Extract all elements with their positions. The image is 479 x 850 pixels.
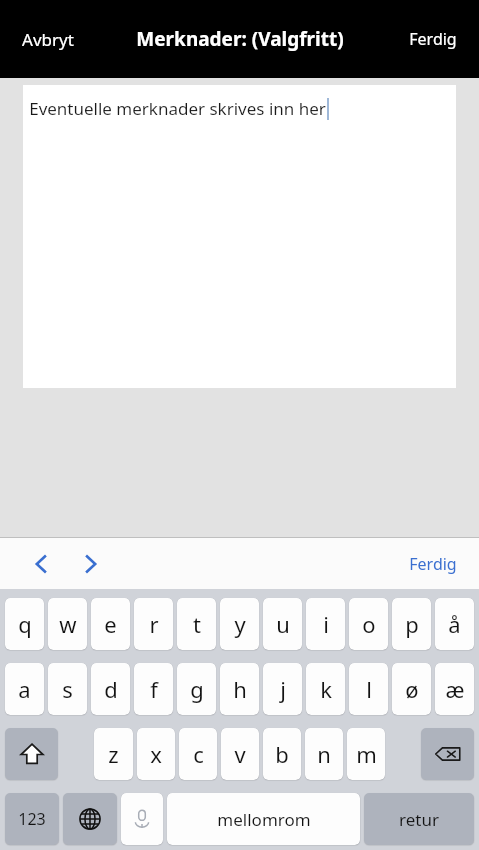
button[interactable]: Next field (70, 544, 110, 584)
staticText: Ferdig (409, 28, 457, 50)
button[interactable]: m (347, 728, 385, 780)
button[interactable]: w (48, 598, 87, 650)
button[interactable]: g (177, 663, 216, 715)
button[interactable]: Eventuelle merknader skrives inn her (23, 85, 456, 388)
staticText: z (108, 739, 119, 769)
staticText: l (366, 674, 372, 704)
button[interactable]: ø (392, 663, 431, 715)
staticText: Ferdig (409, 553, 457, 575)
button[interactable]: Previous field (22, 544, 62, 584)
staticText: o (362, 609, 376, 639)
staticText: b (275, 739, 289, 769)
button[interactable]: Ferdig (397, 545, 469, 583)
staticText: 123 (18, 808, 46, 830)
staticText: s (62, 674, 73, 704)
button[interactable]: j (263, 663, 302, 715)
button[interactable]: c (179, 728, 217, 780)
staticText: f (150, 674, 158, 704)
button[interactable]: k (306, 663, 345, 715)
button[interactable]: æ (435, 663, 474, 715)
staticText: u (276, 609, 290, 639)
staticText: j (280, 674, 286, 704)
staticText: Avbryt (22, 28, 74, 51)
button[interactable]: f (134, 663, 173, 715)
button[interactable]: a (5, 663, 44, 715)
button[interactable]: d (91, 663, 130, 715)
button[interactable]: 123 (5, 793, 59, 845)
button[interactable]: r (134, 598, 173, 650)
button[interactable]: n (305, 728, 343, 780)
staticText: q (18, 609, 32, 639)
staticText: x (150, 739, 162, 769)
staticText: p (405, 609, 419, 639)
button[interactable]: x (137, 728, 175, 780)
staticText: mellomrom (217, 808, 311, 831)
staticText: k (320, 674, 332, 704)
staticText: t (193, 609, 201, 639)
staticText: n (317, 739, 331, 769)
staticText: w (59, 609, 77, 639)
staticText: c (193, 739, 204, 769)
button[interactable]: Dictation (121, 793, 163, 845)
staticText: d (104, 674, 118, 704)
staticText: v (234, 739, 246, 769)
button[interactable]: Avbryt (10, 20, 86, 59)
button[interactable]: t (177, 598, 216, 650)
button[interactable]: Backspace (421, 728, 474, 780)
staticText: g (190, 674, 204, 704)
button[interactable]: v (221, 728, 259, 780)
staticText: Eventuelle merknader skrives inn her (29, 97, 326, 120)
staticText: m (356, 739, 377, 769)
button[interactable]: l (349, 663, 388, 715)
staticText: å (448, 609, 461, 639)
staticText: r (149, 609, 159, 639)
staticText: retur (399, 808, 439, 831)
button[interactable]: y (220, 598, 259, 650)
button[interactable]: z (94, 728, 133, 780)
button[interactable]: o (349, 598, 388, 650)
staticText: h (233, 674, 247, 704)
button[interactable]: u (263, 598, 302, 650)
button[interactable]: mellomrom (167, 793, 360, 845)
button[interactable]: b (263, 728, 301, 780)
button[interactable]: Shift (5, 728, 58, 780)
staticText: i (323, 609, 329, 639)
staticText: ø (405, 674, 419, 704)
staticText: a (18, 674, 31, 704)
button[interactable]: å (435, 598, 474, 650)
staticText: e (104, 609, 117, 639)
button[interactable]: p (392, 598, 431, 650)
button[interactable]: Change keyboard language (63, 793, 117, 845)
button[interactable]: s (48, 663, 87, 715)
button[interactable]: Ferdig (397, 20, 469, 58)
button[interactable]: i (306, 598, 345, 650)
button[interactable]: h (220, 663, 259, 715)
staticText: Merknader: (Valgfritt) (136, 26, 344, 52)
button[interactable]: e (91, 598, 130, 650)
staticText: æ (445, 674, 465, 704)
button[interactable]: q (5, 598, 44, 650)
button[interactable]: retur (364, 793, 474, 845)
staticText: y (234, 609, 246, 639)
